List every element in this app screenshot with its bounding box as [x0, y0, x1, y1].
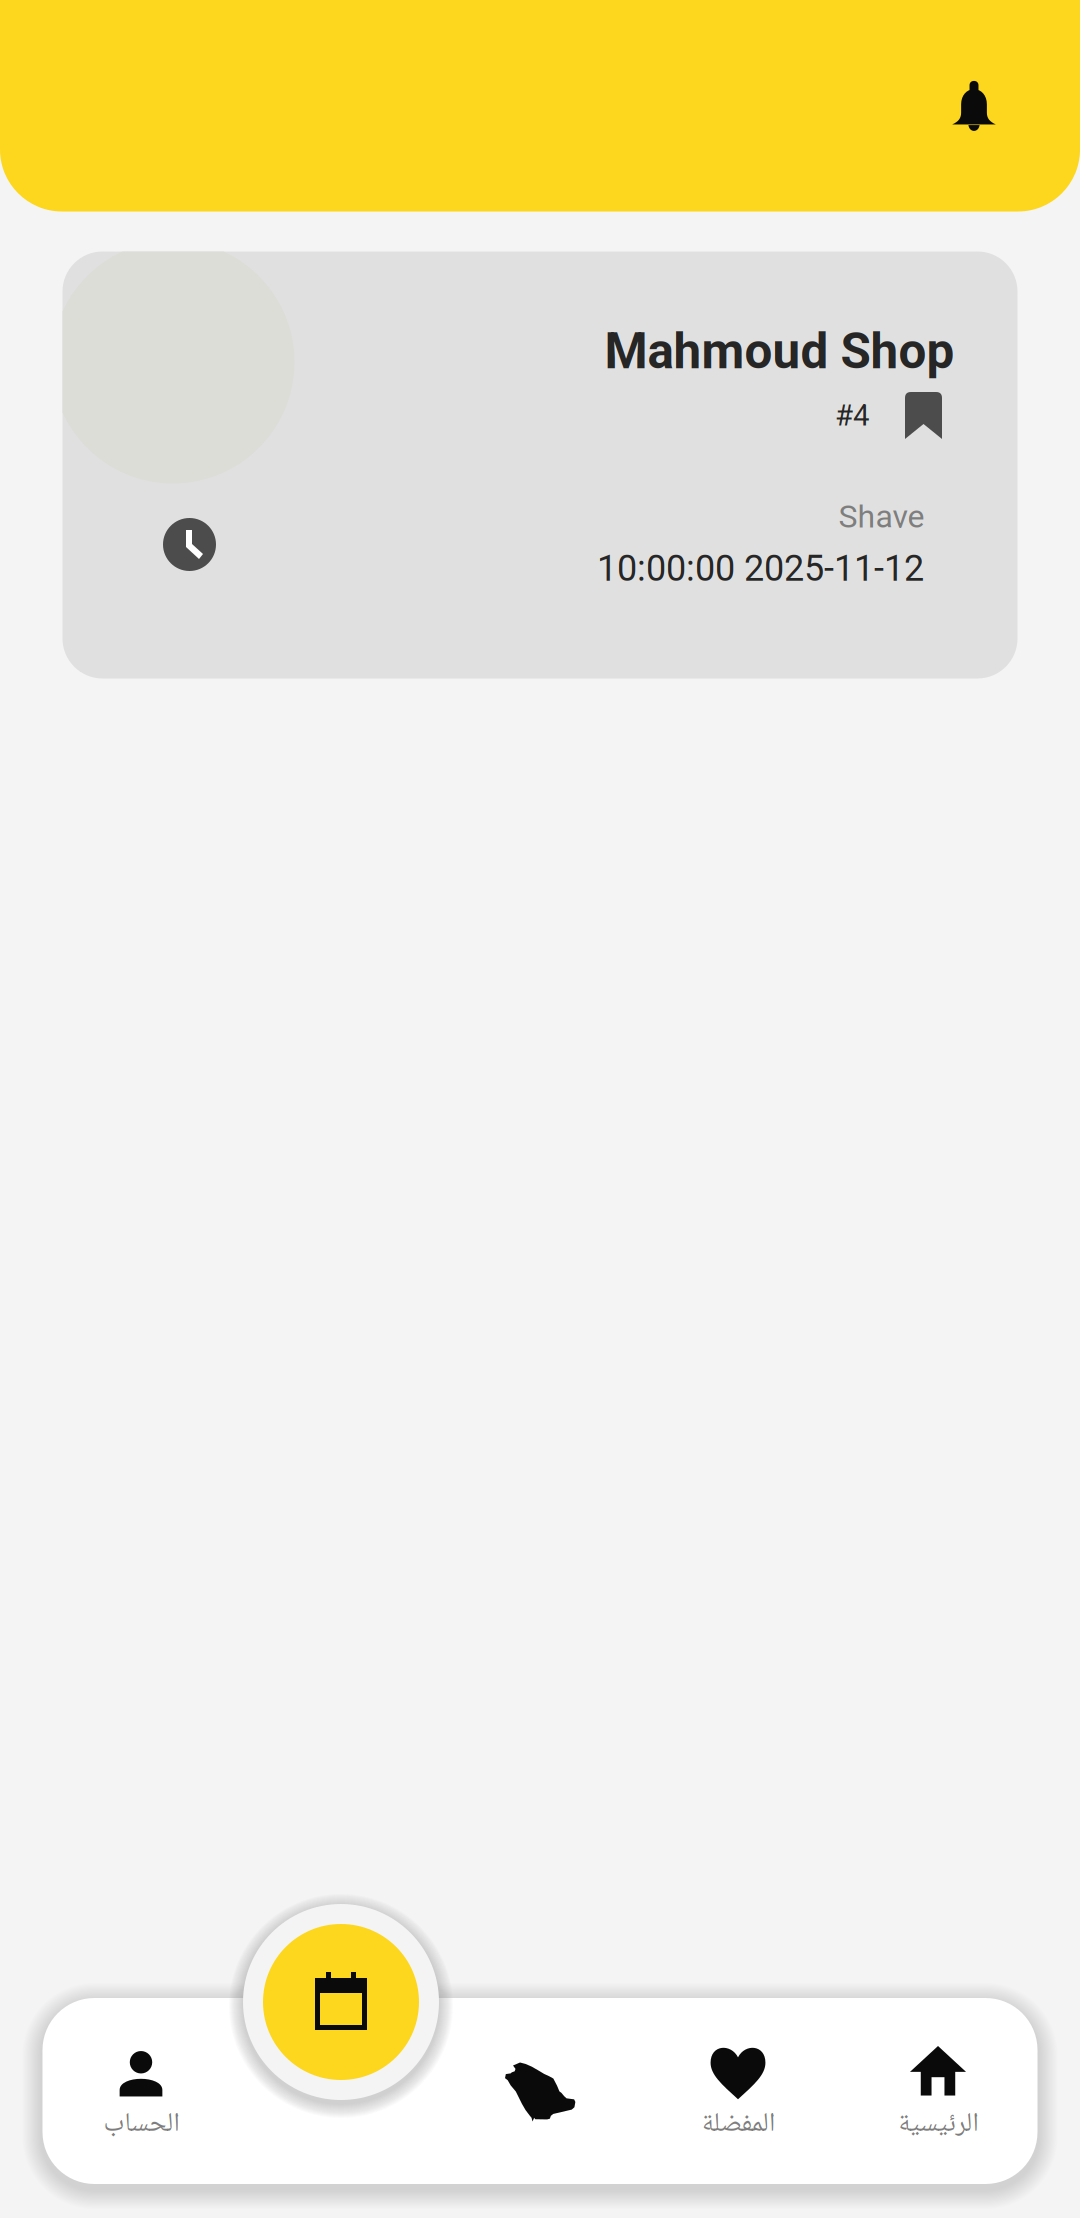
- button[interactable]: Notifications: [914, 46, 1034, 166]
- staticText: الرئيسية: [898, 2102, 978, 2148]
- staticText: Mahmoud Shop: [604, 323, 954, 380]
- staticText: الحساب: [103, 2102, 179, 2148]
- button[interactable]: الحساب: [51, 1998, 231, 2184]
- staticText: Shave: [838, 498, 924, 535]
- staticText: #4: [835, 398, 869, 433]
- button[interactable]: الرئيسية: [848, 1998, 1028, 2184]
- button[interactable]: المفضلة: [648, 1998, 828, 2184]
- button[interactable]: Mahmoud Shop: [62, 251, 1017, 678]
- staticText: المفضلة: [701, 2102, 774, 2148]
- button[interactable]: Bookings: [233, 1894, 449, 2110]
- staticText: 10:00:00 2025-11-12: [597, 547, 924, 590]
- button[interactable]: Map: [450, 1998, 630, 2184]
